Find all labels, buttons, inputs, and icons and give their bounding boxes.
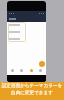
button[interactable]: Tab 4 (36, 66, 45, 75)
button[interactable] (8, 22, 26, 42)
button[interactable]: Tab 1 (8, 66, 17, 75)
button[interactable] (7, 16, 46, 22)
button[interactable]: Add alarm (39, 61, 45, 67)
staticText: 設定画面からテーマカラーを (0, 83, 64, 89)
button[interactable]: Tab 3 (27, 66, 36, 75)
staticText: 自由に変更できます (0, 90, 64, 96)
button[interactable]: Tab 2 (17, 66, 26, 75)
